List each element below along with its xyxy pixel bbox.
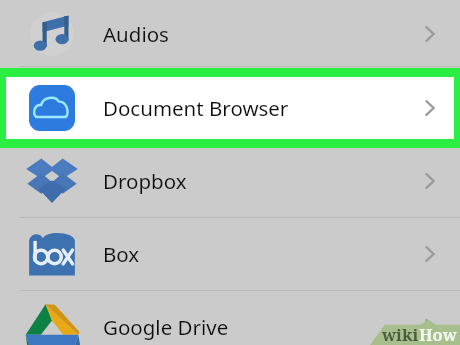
staticText: Document Browser [103,94,289,122]
staticText: wiki [382,323,419,344]
button[interactable]: Dropbox [0,144,460,217]
staticText: Box [103,240,140,268]
staticText: Audios [103,20,169,48]
button[interactable]: Document Browser [0,71,460,144]
staticText: Google Drive [103,313,229,341]
button[interactable]: Google Drive [0,290,460,345]
button[interactable]: Box [0,217,460,290]
staticText: Dropbox [103,167,187,195]
staticText: How [419,323,457,344]
button[interactable]: Audios [0,0,460,70]
